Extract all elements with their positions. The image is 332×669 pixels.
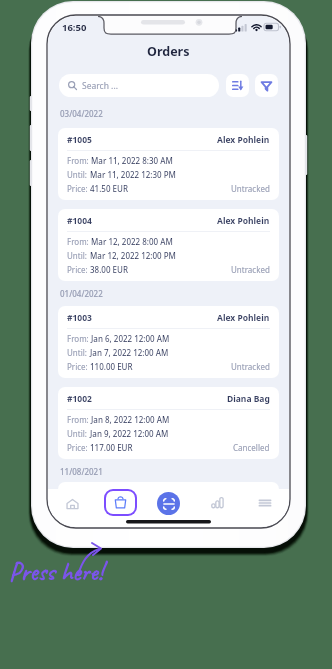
staticText: Jan 6, 2022 12:00 AM: [91, 333, 170, 344]
staticText: Jan 8, 2022 12:00 AM: [91, 414, 170, 425]
staticText: Until:: [67, 428, 90, 439]
button[interactable]: #1004: [58, 209, 279, 281]
button[interactable]: Home: [58, 490, 87, 518]
staticText: #1002: [67, 393, 92, 405]
staticText: From:: [67, 414, 91, 425]
staticText: 16:50: [62, 21, 87, 34]
staticText: Jan 7, 2022 12:00 AM: [90, 347, 169, 358]
staticText: Mar 11, 2022 8:30 AM: [91, 155, 173, 166]
staticText: Until:: [67, 169, 90, 180]
staticText: Price:: [67, 264, 90, 275]
staticText: Untracked: [231, 264, 270, 275]
button[interactable]: #1002: [58, 387, 279, 459]
staticText: 117.00 EUR: [90, 442, 133, 453]
staticText: 11/08/2021: [60, 466, 103, 477]
button[interactable]: Orders: [104, 489, 137, 516]
staticText: Mar 12, 2022 8:00 AM: [91, 236, 173, 247]
staticText: 41.50 EUR: [90, 183, 128, 194]
staticText: 38.00 EUR: [90, 264, 128, 275]
button[interactable]: Menu: [250, 489, 280, 517]
staticText: From:: [67, 155, 91, 166]
staticText: Mar 12, 2022 12:00 PM: [90, 250, 176, 261]
staticText: #1003: [67, 312, 92, 324]
button[interactable]: Filter: [255, 74, 278, 97]
staticText: Alex Pohlein: [217, 134, 270, 146]
staticText: #1005: [67, 134, 92, 146]
staticText: Until:: [67, 347, 90, 358]
staticText: Untracked: [231, 183, 270, 194]
staticText: 03/04/2022: [60, 108, 103, 119]
staticText: From:: [67, 333, 91, 344]
button[interactable]: #1005: [58, 128, 279, 200]
staticText: Press here!: [9, 556, 103, 588]
button[interactable]: Search ...: [59, 74, 219, 97]
staticText: 01/04/2022: [60, 288, 103, 299]
button[interactable]: Scan: [157, 492, 180, 515]
staticText: Price:: [67, 361, 90, 372]
staticText: Mar 11, 2022 12:30 PM: [90, 169, 176, 180]
staticText: Price:: [67, 183, 90, 194]
button[interactable]: #1003: [58, 306, 279, 378]
staticText: From:: [67, 236, 91, 247]
staticText: Until:: [67, 250, 90, 261]
staticText: Price:: [67, 442, 90, 453]
staticText: 110.00 EUR: [90, 361, 133, 372]
staticText: Untracked: [231, 361, 270, 372]
staticText: #1004: [67, 215, 92, 227]
staticText: Alex Pohlein: [217, 215, 270, 227]
staticText: Search ...: [82, 80, 118, 92]
button[interactable]: Statistics: [203, 488, 232, 517]
staticText: Jan 9, 2022 12:00 AM: [90, 428, 169, 439]
staticText: Alex Pohlein: [217, 312, 270, 324]
staticText: Cancelled: [233, 442, 270, 453]
button[interactable]: Sort: [226, 74, 249, 97]
staticText: Orders: [147, 43, 190, 60]
staticText: Diana Bag: [227, 393, 270, 405]
